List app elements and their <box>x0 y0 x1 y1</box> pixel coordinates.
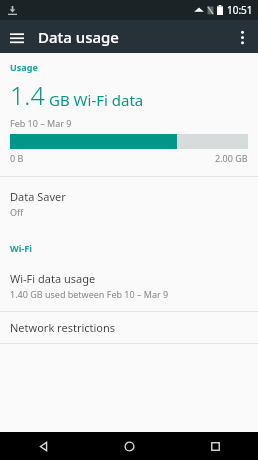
staticText: Wi-Fi data usage <box>10 271 96 286</box>
staticText: Data usage <box>38 27 119 47</box>
staticText: 1.4 <box>10 78 45 112</box>
staticText: 0 B <box>10 152 24 164</box>
button[interactable]: Network restrictions <box>0 312 258 343</box>
staticText: 2.00 GB <box>215 152 248 164</box>
staticText: Off <box>10 206 24 218</box>
button[interactable]: Wi-Fi data usage <box>0 269 258 306</box>
staticText: Feb 10 – Mar 9 <box>10 117 72 129</box>
button[interactable]: More options <box>227 22 257 52</box>
staticText: Network restrictions <box>10 320 116 335</box>
staticText: Usage <box>10 61 38 73</box>
staticText: 10:51 <box>227 3 253 17</box>
button[interactable]: Data Saver <box>0 177 258 230</box>
button[interactable]: Open navigation drawer <box>2 22 32 52</box>
staticText: Wi-Fi <box>10 242 32 254</box>
button[interactable]: Back <box>0 432 86 460</box>
staticText: Data Saver <box>10 189 66 204</box>
button[interactable]: Recent apps <box>172 432 258 460</box>
staticText: 1.40 GB used between Feb 10 – Mar 9 <box>10 288 169 300</box>
button[interactable]: Home <box>86 432 172 460</box>
staticText: GB Wi-Fi data <box>49 90 144 110</box>
